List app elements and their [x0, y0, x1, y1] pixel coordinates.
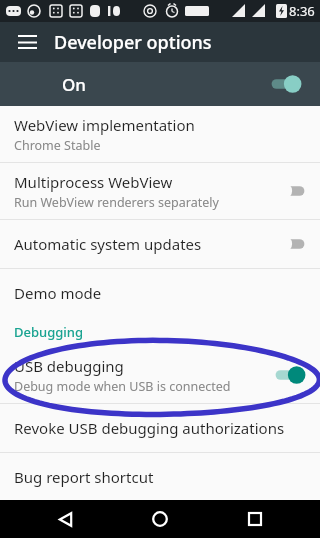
button[interactable]: On: [0, 62, 320, 106]
staticText: Revoke USB debugging authorizations: [14, 418, 310, 438]
button[interactable]: Back: [35, 500, 95, 538]
button[interactable]: Bug report shortcut: [0, 453, 320, 500]
staticText: Chrome Stable: [14, 137, 101, 154]
staticText: Demo mode: [14, 283, 310, 303]
staticText: USB debugging: [14, 356, 124, 376]
button[interactable]: Open navigation drawer: [10, 25, 44, 59]
button[interactable]: Multiprocess WebView: [0, 163, 320, 219]
staticText: Run WebView renderers separately: [14, 194, 219, 211]
staticText: 8:36: [289, 2, 315, 20]
button[interactable]: Home: [130, 500, 190, 538]
staticText: WebView implementation: [14, 115, 195, 135]
staticText: Multiprocess WebView: [14, 172, 173, 192]
staticText: Debugging: [14, 323, 84, 341]
staticText: Debug mode when USB is connected: [14, 378, 231, 395]
button[interactable]: Automatic system updates: [0, 220, 320, 268]
button[interactable]: Revoke USB debugging authorizations: [0, 404, 320, 452]
staticText: On: [62, 73, 86, 96]
button[interactable]: WebView implementation: [0, 106, 320, 162]
button[interactable]: Demo mode: [0, 269, 320, 317]
staticText: Bug report shortcut: [14, 467, 310, 487]
staticText: Automatic system updates: [14, 234, 270, 254]
button[interactable]: Recent apps: [225, 500, 285, 538]
staticText: Developer options: [54, 30, 212, 55]
button[interactable]: USB debugging: [0, 347, 320, 403]
